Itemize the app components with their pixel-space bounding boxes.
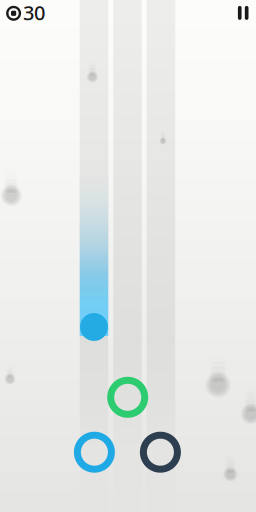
button[interactable]: Pause (227, 0, 256, 29)
staticText: 30 (23, 0, 45, 26)
